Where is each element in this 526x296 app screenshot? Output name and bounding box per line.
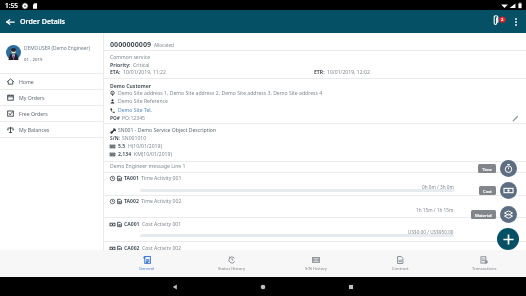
staticText: General bbox=[139, 266, 155, 272]
button[interactable]: Time bbox=[478, 164, 496, 173]
staticText: Time bbox=[482, 166, 492, 172]
staticText: Common service bbox=[110, 54, 151, 61]
staticText: Home bbox=[19, 78, 34, 85]
staticText: 2 bbox=[501, 17, 504, 22]
button[interactable]: Cost bbox=[479, 186, 496, 195]
button[interactable]: S/N History bbox=[274, 250, 358, 277]
staticText: 01 - 2019 bbox=[24, 56, 43, 62]
staticText: 10/01/2019, 12:02 bbox=[327, 69, 370, 76]
staticText: Demo Customer bbox=[110, 83, 152, 90]
staticText: Status History bbox=[218, 266, 246, 272]
staticText: Time Activity 002 bbox=[141, 198, 182, 205]
button[interactable]: Recents bbox=[342, 278, 360, 296]
staticText: 5.5 bbox=[118, 143, 126, 150]
staticText: H(10/01/2019) bbox=[128, 143, 162, 150]
staticText: 2,134 bbox=[118, 151, 132, 158]
staticText: 0h 0m / 3h 0m bbox=[422, 184, 454, 190]
staticText: S/N History bbox=[305, 266, 327, 272]
button[interactable]: My Orders bbox=[0, 90, 103, 105]
staticText: Free Orders bbox=[19, 110, 48, 117]
staticText: PO# bbox=[110, 115, 120, 122]
button[interactable]: Home bbox=[0, 74, 103, 89]
staticText: US$0.00 / US$950.00 bbox=[408, 229, 454, 235]
button[interactable]: More options bbox=[509, 10, 523, 33]
staticText: Demo Site address 1, Demo Site address 2… bbox=[118, 90, 323, 97]
button[interactable]: Cost bbox=[500, 182, 517, 199]
button[interactable]: Transactions bbox=[442, 250, 526, 277]
staticText: Cost bbox=[483, 188, 492, 194]
staticText: Time Activity 001 bbox=[141, 175, 182, 182]
button[interactable]: Material bbox=[471, 210, 496, 219]
staticText: CA001 bbox=[124, 221, 140, 228]
staticText: S/N: bbox=[110, 135, 120, 142]
button[interactable]: General bbox=[104, 250, 189, 277]
staticText: ETA: bbox=[110, 69, 121, 76]
button[interactable]: Back bbox=[166, 278, 184, 296]
staticText: My Balances bbox=[19, 126, 50, 133]
button[interactable]: Free Orders bbox=[0, 106, 103, 121]
staticText: Allocated bbox=[154, 42, 174, 48]
button[interactable]: Attachments bbox=[488, 10, 505, 33]
staticText: Demo Site Reference bbox=[118, 98, 168, 105]
staticText: KM(10/01/2019) bbox=[134, 151, 172, 158]
staticText: 10/01/2019, 11:22 bbox=[123, 69, 166, 76]
staticText: TA001 bbox=[124, 175, 139, 182]
staticText: Cost Activity 002 bbox=[142, 245, 182, 252]
staticText: 1:55 bbox=[5, 1, 18, 10]
button[interactable]: Contract bbox=[358, 250, 442, 277]
button[interactable]: Back bbox=[0, 10, 20, 33]
staticText: TA002 bbox=[124, 198, 139, 205]
button[interactable]: Material bbox=[500, 206, 517, 223]
staticText: Cost Activity 001 bbox=[142, 221, 182, 228]
staticText: SN001 - Demo Service Object Description bbox=[118, 127, 217, 134]
staticText: Transactions bbox=[472, 266, 497, 272]
staticText: SN001010 bbox=[122, 135, 147, 142]
staticText: 1h 15m / 1h 15m bbox=[416, 207, 454, 213]
staticText: Contract bbox=[392, 266, 409, 272]
button[interactable]: Home bbox=[254, 278, 272, 296]
button[interactable]: Add bbox=[497, 228, 519, 250]
staticText: Priority: bbox=[110, 62, 131, 69]
staticText: My Orders bbox=[19, 94, 45, 101]
staticText: Critical bbox=[133, 62, 150, 69]
button[interactable]: Edit bbox=[509, 112, 521, 124]
staticText: PO:12345 bbox=[122, 115, 145, 122]
staticText: Demo Engineer message Line 1 bbox=[110, 163, 186, 170]
staticText: Order Details bbox=[20, 16, 66, 26]
staticText: 0000000009 bbox=[110, 39, 152, 49]
button[interactable]: Time bbox=[500, 160, 517, 177]
staticText: ETR: bbox=[314, 69, 325, 76]
staticText: DEMOUSER (Demo Engineer) bbox=[24, 45, 90, 52]
button[interactable]: My Balances bbox=[0, 122, 103, 137]
button[interactable]: Status History bbox=[189, 250, 274, 277]
staticText: CA002 bbox=[124, 245, 140, 252]
staticText: Demo Site Tel. bbox=[118, 107, 152, 114]
staticText: Material bbox=[475, 212, 492, 218]
